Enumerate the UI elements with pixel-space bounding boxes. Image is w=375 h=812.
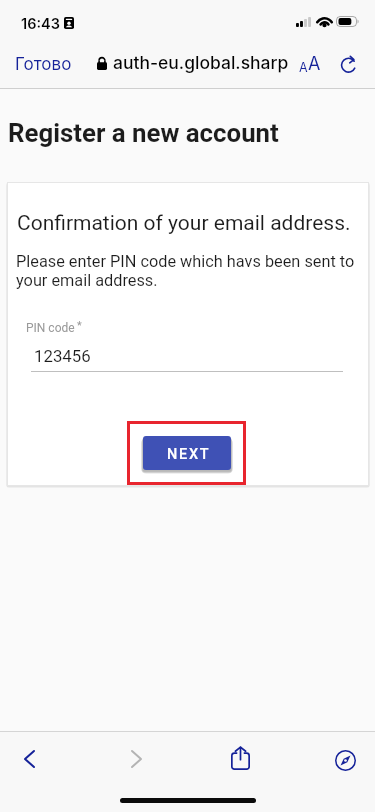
staticText: 123456 xyxy=(34,346,91,366)
staticText: Register a new account xyxy=(8,118,279,148)
button[interactable]: Share xyxy=(221,739,259,777)
staticText: NEXT xyxy=(167,446,211,463)
button[interactable]: Готово xyxy=(6,50,81,79)
staticText: * xyxy=(77,319,82,332)
staticText: A xyxy=(308,53,321,75)
staticText: A xyxy=(299,60,308,75)
button[interactable]: NEXT xyxy=(143,436,231,470)
staticText: 16:43 xyxy=(21,15,60,33)
button[interactable]: Back xyxy=(10,740,48,778)
staticText: Confirmation of your email address. xyxy=(17,211,351,236)
button[interactable]: Bookmarks xyxy=(326,741,364,779)
button[interactable]: auth-eu.global.sharp xyxy=(5,52,375,73)
staticText: auth-eu.global.sharp xyxy=(113,52,289,73)
staticText: PIN code xyxy=(26,321,75,335)
button[interactable]: Reload page xyxy=(335,51,362,78)
staticText: Please enter PIN code which havs been se… xyxy=(16,252,355,290)
staticText: Готово xyxy=(15,54,72,75)
button[interactable]: Text size options xyxy=(296,52,324,76)
button[interactable]: Forward xyxy=(117,740,155,778)
